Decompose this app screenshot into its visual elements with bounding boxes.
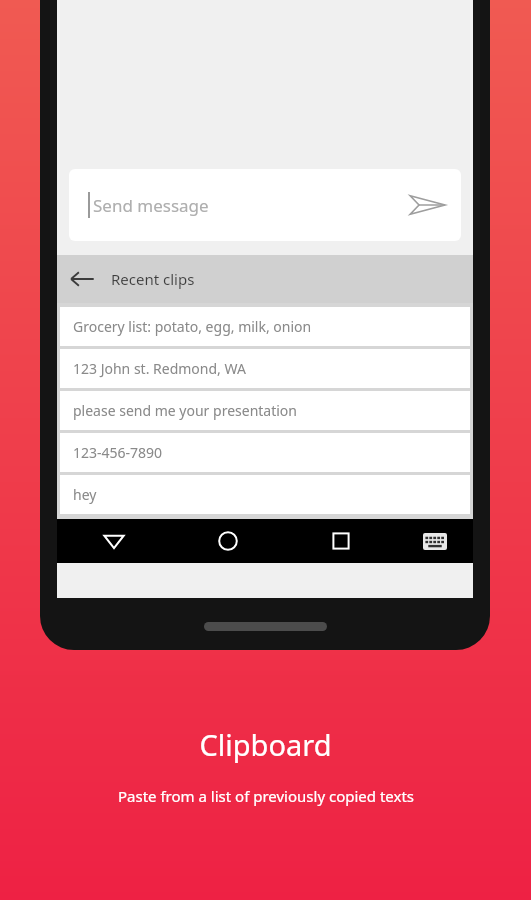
button[interactable]: Recents bbox=[284, 519, 397, 563]
staticText: please send me your presentation bbox=[73, 401, 297, 420]
staticText: hey bbox=[73, 485, 97, 504]
button[interactable]: Send bbox=[401, 179, 453, 231]
button[interactable]: Back bbox=[63, 260, 101, 298]
staticText: 123 John st. Redmond, WA bbox=[73, 359, 246, 378]
staticText: Recent clips bbox=[111, 269, 195, 289]
staticText: Grocery list: potato, egg, milk, onion bbox=[73, 317, 312, 336]
button[interactable]: Home bbox=[171, 519, 284, 563]
button[interactable]: 123-456-7890 bbox=[60, 433, 470, 472]
button[interactable]: Grocery list: potato, egg, milk, onion bbox=[60, 307, 470, 346]
button[interactable]: please send me your presentation bbox=[60, 391, 470, 430]
button[interactable]: Send message bbox=[69, 169, 461, 241]
button[interactable]: 123 John st. Redmond, WA bbox=[60, 349, 470, 388]
staticText: Send message bbox=[93, 194, 209, 217]
staticText: 123-456-7890 bbox=[73, 443, 163, 462]
button[interactable]: hey bbox=[60, 475, 470, 514]
button[interactable]: Back bbox=[57, 519, 171, 563]
button[interactable]: Switch keyboard bbox=[397, 519, 473, 563]
staticText: Paste from a list of previously copied t… bbox=[118, 786, 414, 806]
staticText: Clipboard bbox=[199, 725, 332, 764]
button[interactable]: Back bbox=[57, 255, 473, 303]
